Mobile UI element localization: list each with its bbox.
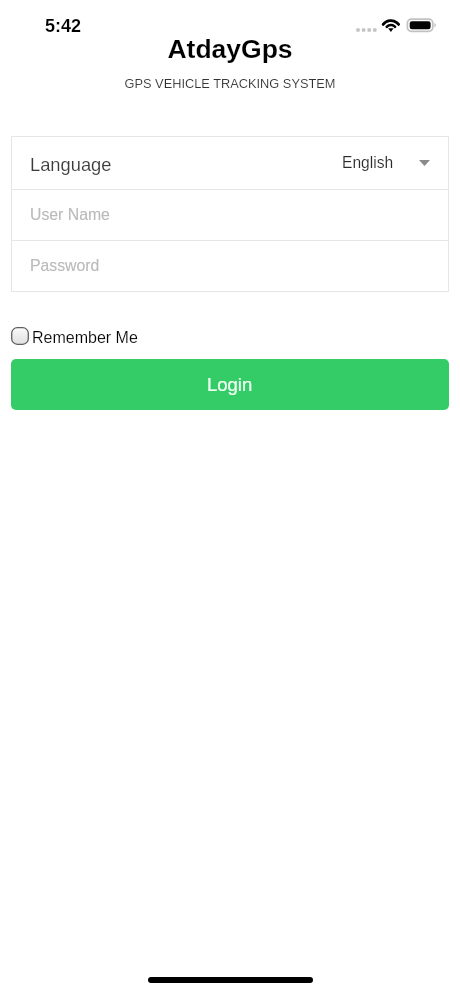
staticText: GPS VEHICLE TRACKING SYSTEM: [0, 76, 460, 90]
button[interactable]: User Name: [11, 190, 449, 240]
other: Wi-Fi: [381, 16, 401, 32]
button[interactable]: Login: [11, 359, 449, 410]
staticText: Language: [30, 154, 112, 174]
button[interactable]: Password: [11, 241, 449, 291]
staticText: 5:42: [45, 16, 82, 36]
button[interactable]: Remember Me: [11, 327, 135, 345]
staticText: Password: [30, 257, 100, 275]
staticText: User Name: [30, 206, 110, 224]
staticText: Remember Me: [32, 329, 138, 347]
other: Battery full: [406, 17, 437, 33]
other: Cellular signal: [355, 27, 377, 33]
staticText: AtdayGps: [0, 34, 460, 64]
staticText: English: [342, 154, 394, 171]
staticText: Login: [207, 374, 253, 395]
button[interactable]: Language: [11, 137, 449, 189]
